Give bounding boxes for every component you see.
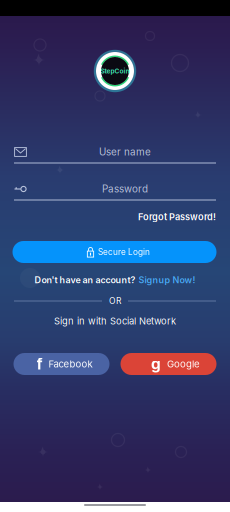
button[interactable]: Forgot Password! (126, 210, 216, 224)
staticText: StepCoin (100, 67, 129, 75)
staticText: f (36, 355, 42, 373)
staticText: Secure Login (98, 247, 150, 257)
staticText: Password (102, 183, 148, 195)
button[interactable]: f (13, 353, 109, 375)
button[interactable]: Don't have an account? (34, 275, 195, 285)
staticText: Google (167, 358, 200, 370)
staticText: Facebook (48, 358, 92, 370)
staticText: Sign in with Social Network (54, 315, 176, 327)
staticText: Don't have an account? (34, 275, 135, 285)
staticText: OR (109, 296, 121, 306)
staticText: g (151, 355, 161, 373)
staticText: Forgot Password! (138, 211, 216, 222)
button[interactable]: g (120, 353, 216, 375)
button[interactable]: Secure Login (12, 241, 216, 263)
staticText: Signup Now! (138, 275, 195, 285)
staticText: User name (99, 146, 151, 158)
